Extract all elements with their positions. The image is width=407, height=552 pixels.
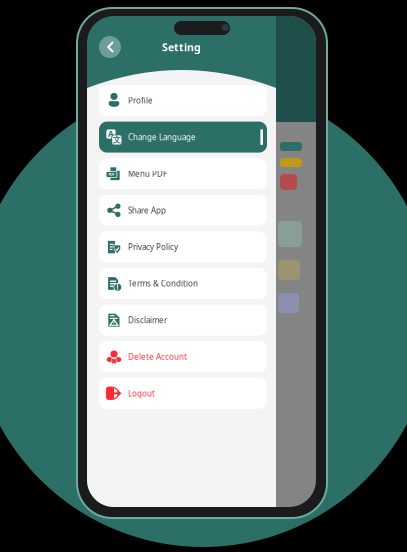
staticText: Privacy Policy [128, 242, 178, 252]
staticText: Share App [128, 205, 166, 216]
button[interactable]: Delete Account [99, 341, 267, 372]
staticText: Delete Account [128, 351, 187, 362]
staticText: A [107, 127, 113, 139]
staticText: Menu PDF [128, 168, 167, 179]
staticText: ! [117, 281, 120, 293]
staticText: Terms & Condition [128, 278, 198, 289]
button[interactable]: Profile [99, 85, 267, 116]
button[interactable]: A [99, 122, 267, 153]
staticText: Setting [162, 40, 201, 54]
staticText: Profile [128, 95, 153, 106]
button[interactable]: Disclaimer [99, 305, 267, 336]
button[interactable]: Privacy Policy [99, 231, 267, 262]
button[interactable]: Share App [99, 195, 267, 226]
staticText: PDF [108, 172, 115, 177]
button[interactable]: PDF [99, 158, 267, 189]
staticText: Disclaimer [128, 315, 167, 325]
staticText: Logout [128, 388, 155, 399]
button[interactable]: Logout [99, 378, 267, 409]
button[interactable]: Back [97, 34, 123, 60]
staticText: 文 [113, 134, 122, 146]
button[interactable]: ! [99, 268, 267, 299]
staticText: Change Language [128, 132, 196, 142]
